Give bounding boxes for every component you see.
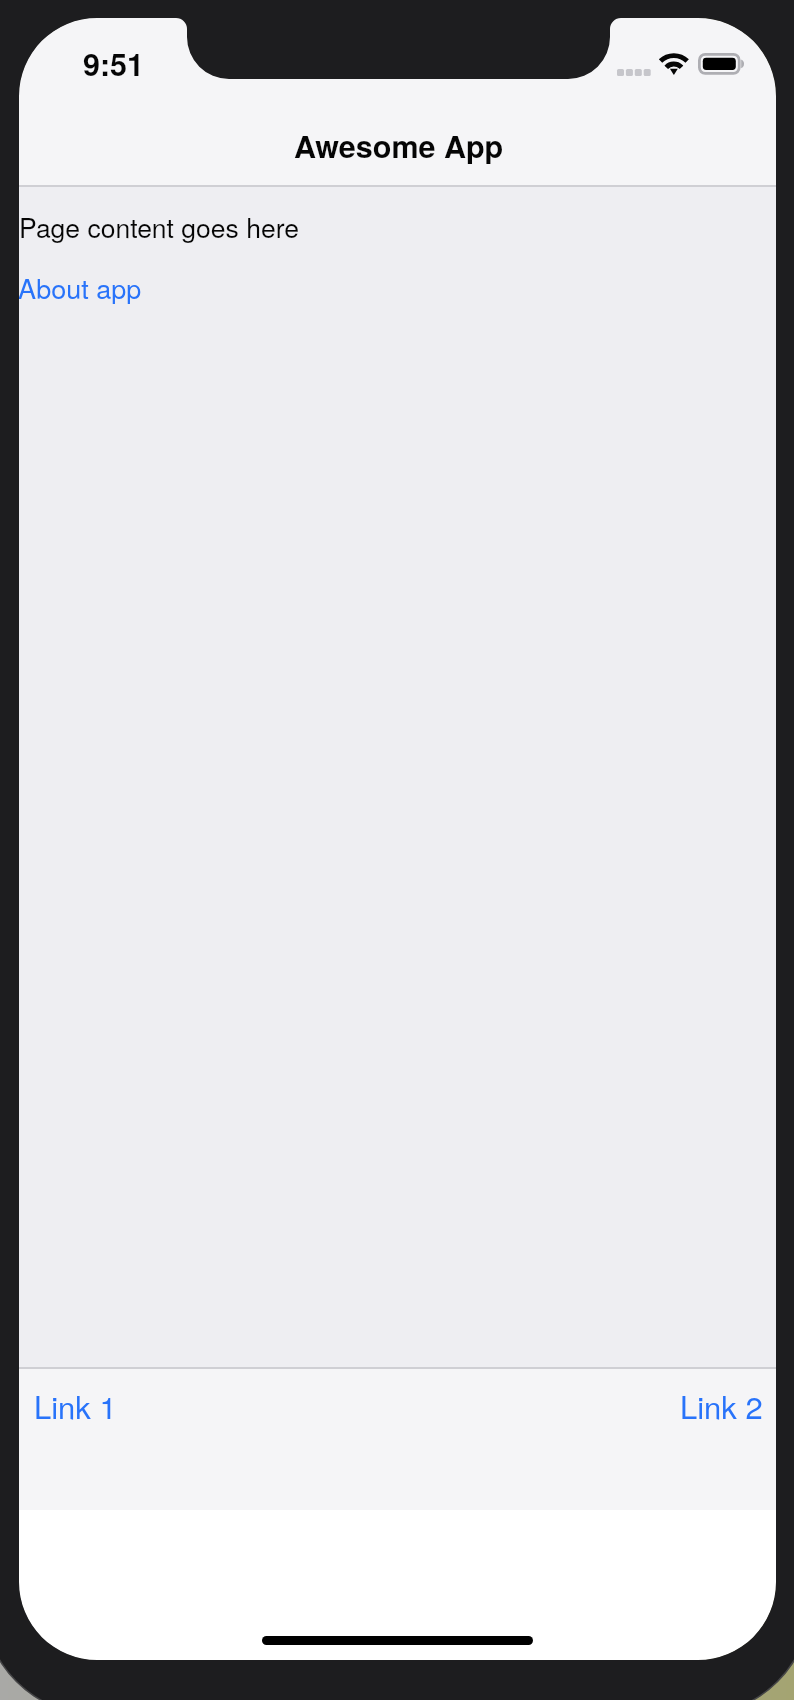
staticText: Link 2 xyxy=(680,1383,763,1427)
other: Cellular signal xyxy=(617,69,651,76)
staticText: 9:51 xyxy=(83,42,145,86)
button[interactable]: About app xyxy=(19,256,154,319)
staticText: Awesome App xyxy=(294,124,504,168)
button[interactable]: Link 1 xyxy=(22,1371,129,1439)
staticText: Link 1 xyxy=(34,1383,117,1427)
staticText: Page content goes here xyxy=(19,208,299,246)
staticText: About app xyxy=(19,268,142,307)
other: Battery full xyxy=(698,53,746,75)
other: Wi-Fi xyxy=(659,53,690,76)
button[interactable]: Link 2 xyxy=(668,1371,775,1439)
